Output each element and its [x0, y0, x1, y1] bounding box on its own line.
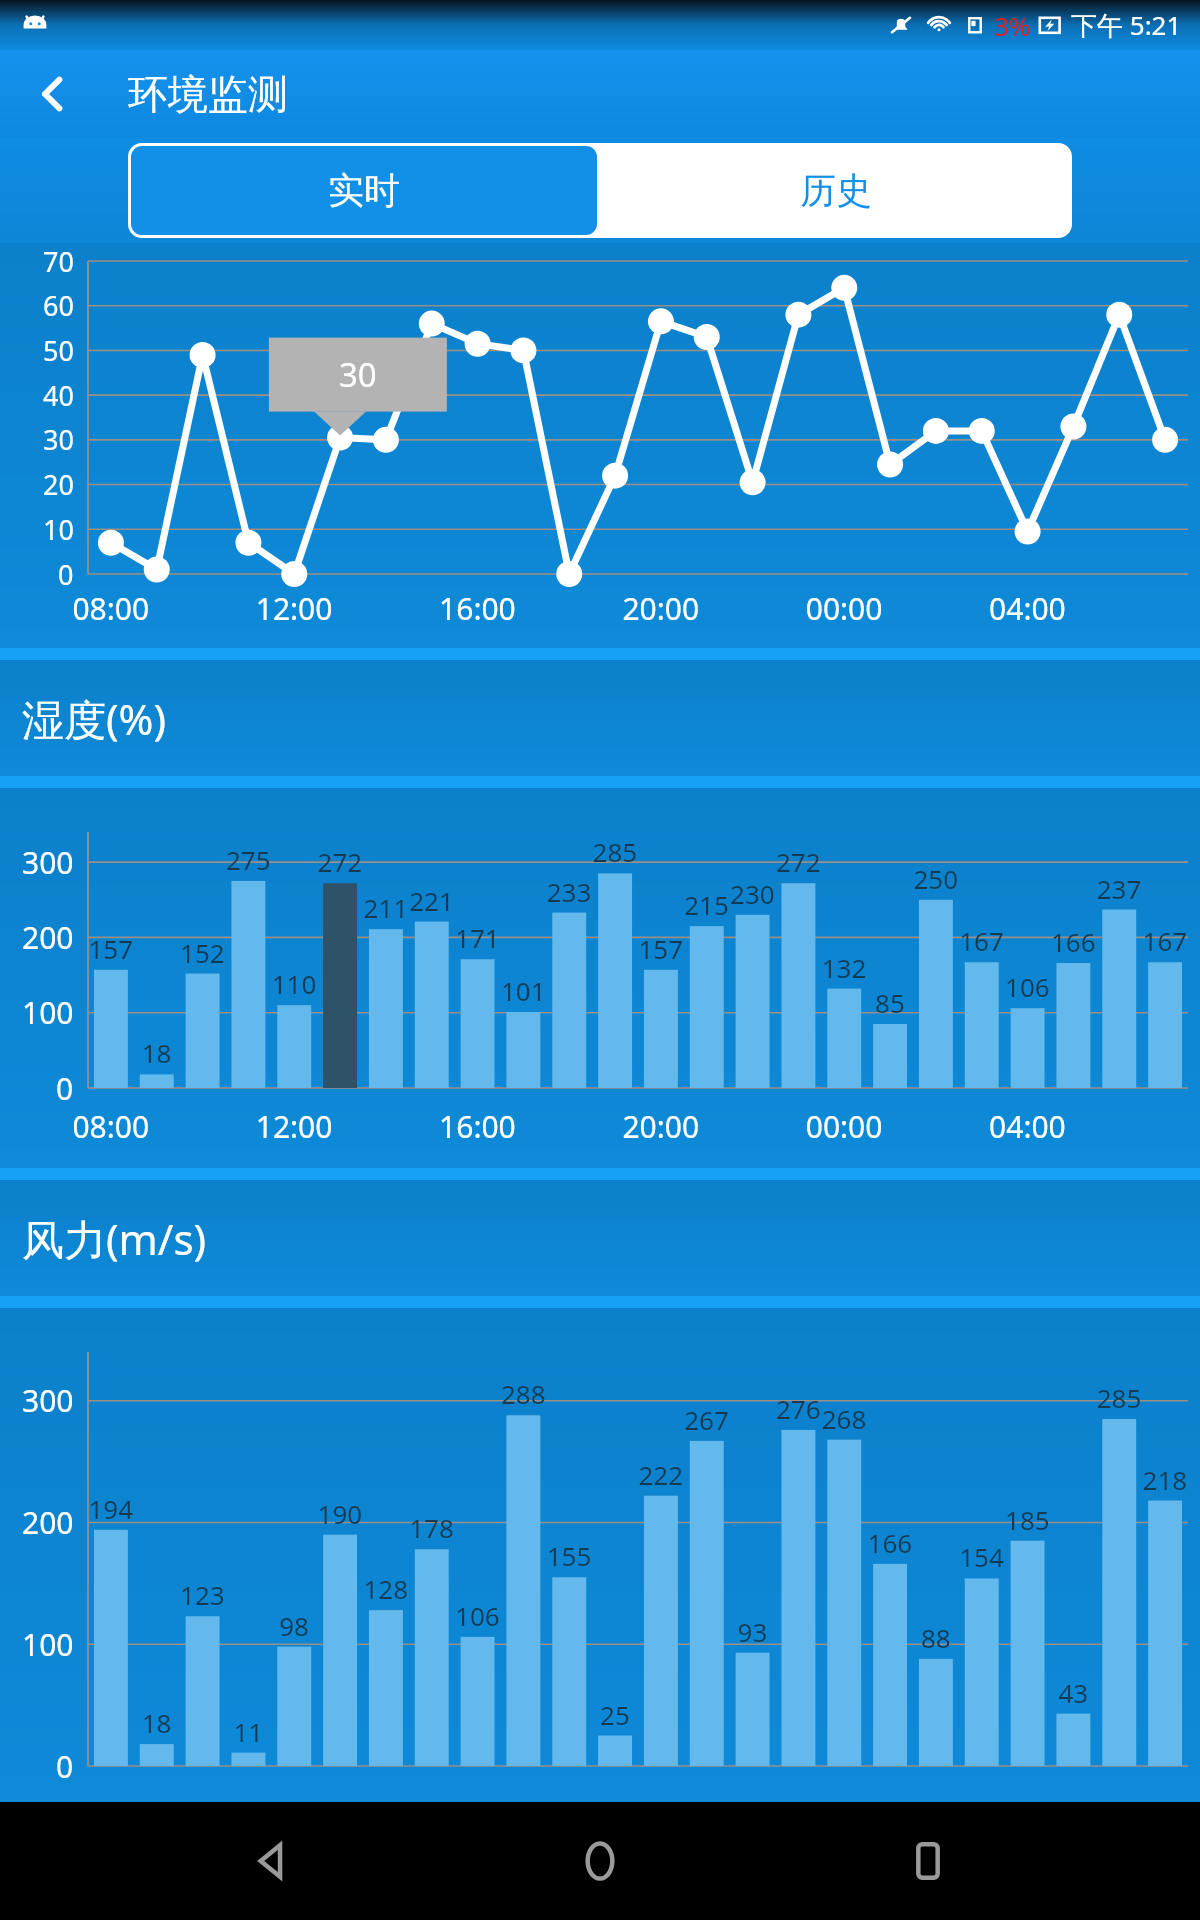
- staticText: 湿度(%): [22, 690, 167, 747]
- staticText: 环境监测: [128, 69, 288, 119]
- button[interactable]: Recent apps: [873, 1806, 983, 1916]
- staticText: 历史: [800, 168, 872, 213]
- staticText: 下午 5:21: [1071, 7, 1182, 43]
- staticText: 风力(m/s): [22, 1210, 207, 1267]
- button[interactable]: Back: [22, 63, 84, 125]
- button[interactable]: Back: [218, 1806, 328, 1916]
- staticText: 3%: [994, 8, 1031, 43]
- button[interactable]: 历史: [600, 143, 1072, 238]
- button[interactable]: 实时: [131, 146, 597, 235]
- staticText: 实时: [328, 168, 400, 213]
- button[interactable]: Home: [545, 1806, 655, 1916]
